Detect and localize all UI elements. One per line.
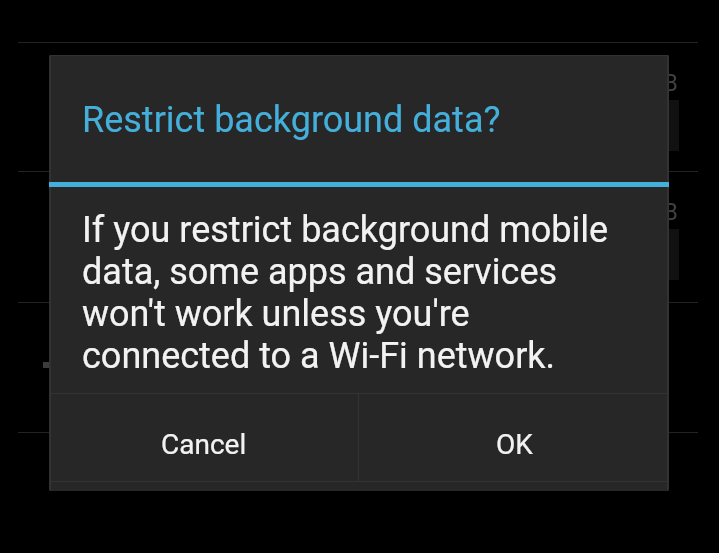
staticText: If you restrict background mobile data, …	[82, 209, 627, 377]
staticText: Restrict background data?	[82, 99, 501, 141]
staticText: 123 MB	[599, 70, 678, 97]
button[interactable]: Cancel	[49, 394, 358, 481]
button[interactable]: OK	[359, 394, 669, 481]
staticText: OK	[496, 428, 533, 461]
staticText: 123 MB	[599, 199, 678, 226]
staticText: Cancel	[161, 428, 247, 461]
